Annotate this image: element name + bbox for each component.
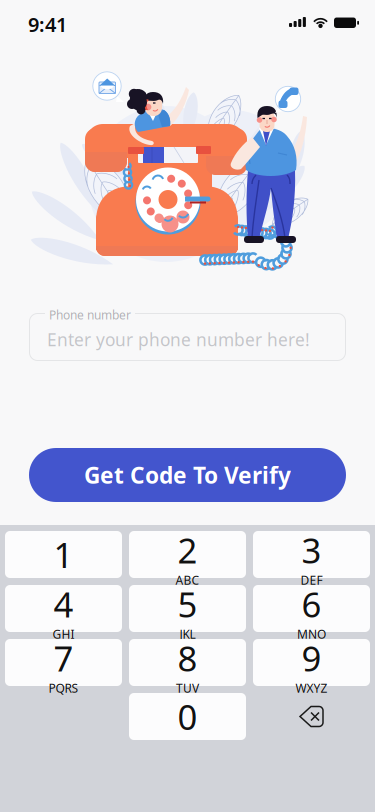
staticText: JKL (179, 626, 195, 642)
staticText: 0 (177, 693, 197, 739)
staticText: 6 (301, 581, 321, 627)
button[interactable]: 1 (5, 531, 122, 578)
staticText: 5 (177, 581, 197, 627)
staticText: DEF (300, 572, 322, 588)
staticText: Get Code To Verify (84, 460, 291, 490)
staticText: 8 (177, 635, 197, 681)
staticText: PQRS (48, 680, 78, 696)
staticText: GHI (52, 626, 74, 642)
staticText: 1 (53, 531, 73, 577)
button[interactable]: 3 (253, 531, 370, 578)
button[interactable]: 7 (5, 639, 122, 686)
staticText: 9:41 (28, 11, 67, 38)
button[interactable]: 4 (5, 585, 122, 632)
staticText: TUV (176, 680, 199, 696)
staticText: 3 (301, 527, 321, 573)
button[interactable]: 5 (129, 585, 246, 632)
staticText: Enter your phone number here! (47, 328, 310, 351)
button[interactable]: 0 (129, 693, 246, 740)
staticText: 2 (177, 527, 197, 573)
staticText: MNO (297, 626, 326, 642)
staticText: 7 (53, 635, 73, 681)
button[interactable]: 6 (253, 585, 370, 632)
staticText: Phone number (49, 307, 131, 323)
button[interactable]: 2 (129, 531, 246, 578)
staticText: ABC (175, 572, 199, 588)
button[interactable]: 9 (253, 639, 370, 686)
staticText: 4 (53, 581, 73, 627)
button[interactable]: Get Code To Verify (29, 448, 346, 502)
staticText: WXYZ (295, 680, 327, 696)
button[interactable]: Delete (253, 693, 370, 740)
staticText: 9 (301, 635, 321, 681)
button[interactable]: 8 (129, 639, 246, 686)
